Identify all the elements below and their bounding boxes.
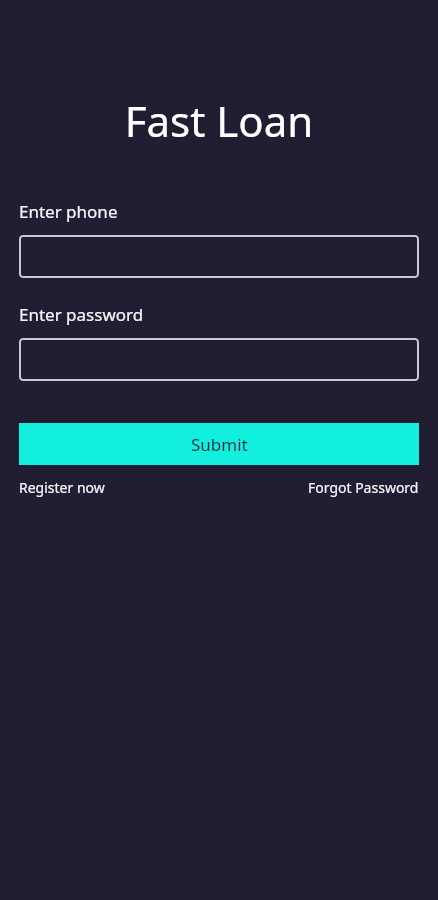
- button[interactable]: [19, 338, 419, 381]
- staticText: Enter password: [19, 303, 144, 326]
- button[interactable]: Submit: [19, 423, 419, 465]
- button[interactable]: Forgot Password: [308, 478, 419, 497]
- staticText: Register now: [19, 478, 105, 497]
- button[interactable]: [19, 235, 419, 278]
- staticText: Submit: [191, 433, 248, 456]
- staticText: Enter phone: [19, 200, 118, 223]
- staticText: Forgot Password: [308, 478, 419, 497]
- staticText: Fast Loan: [0, 92, 438, 149]
- button[interactable]: Register now: [19, 478, 105, 497]
